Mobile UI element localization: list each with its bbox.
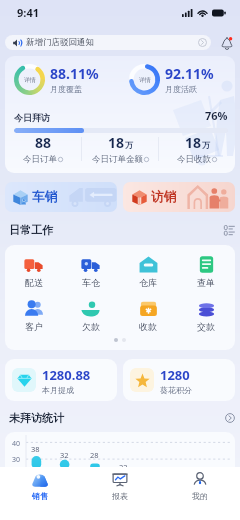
button[interactable]: 18: [159, 133, 235, 165]
staticText: 仓库: [139, 277, 157, 288]
staticText: 访销: [151, 189, 176, 205]
staticText: 万: [202, 140, 210, 150]
staticText: 今日订单金额: [92, 154, 143, 165]
button[interactable]: 客户: [5, 299, 62, 332]
button[interactable]: 访销: [123, 182, 235, 212]
button[interactable]: 详情: [14, 63, 120, 95]
staticText: 今日订单: [23, 154, 57, 165]
button[interactable]: More: [225, 413, 235, 423]
button[interactable]: 车销: [5, 182, 117, 212]
staticText: 葵花积分: [160, 385, 192, 395]
button[interactable]: 报表: [80, 467, 160, 520]
button[interactable]: 销售: [0, 467, 80, 520]
staticText: 交款: [197, 321, 215, 332]
staticText: 1280: [160, 366, 190, 384]
staticText: 32: [60, 450, 69, 460]
staticText: 92.11%: [165, 64, 214, 83]
button[interactable]: 我的: [160, 467, 240, 520]
button[interactable]: 查单: [177, 255, 235, 288]
button[interactable]: 18: [82, 133, 158, 165]
staticText: 88.11%: [50, 64, 99, 83]
staticText: 88: [35, 133, 52, 152]
staticText: 欠款: [82, 321, 100, 332]
staticText: 18: [108, 133, 125, 152]
staticText: 今日拜访: [14, 112, 50, 123]
button[interactable]: List view: [224, 225, 235, 236]
button[interactable]: 详情: [129, 63, 235, 95]
staticText: 未拜访统计: [9, 411, 64, 425]
button[interactable]: 1280.88: [5, 359, 117, 401]
staticText: 30: [12, 455, 21, 465]
staticText: 1280.88: [42, 366, 91, 384]
staticText: 配送: [25, 277, 43, 288]
staticText: 车销: [32, 189, 57, 205]
button[interactable]: 欠款: [62, 299, 119, 332]
staticText: 报表: [112, 491, 128, 501]
button[interactable]: 收款: [119, 299, 177, 332]
staticText: 月度活跃: [165, 84, 197, 94]
staticText: 今日收款: [177, 154, 211, 165]
button[interactable]: 配送: [5, 255, 62, 288]
button[interactable]: Notifications: [221, 35, 233, 50]
staticText: 详情: [139, 76, 151, 84]
staticText: 38: [31, 444, 40, 454]
staticText: 新增门店驳回通知: [26, 37, 94, 48]
button[interactable]: 车仓: [62, 255, 119, 288]
staticText: 车仓: [82, 277, 100, 288]
button[interactable]: 新增门店驳回通知: [5, 35, 211, 50]
staticText: 28: [90, 450, 99, 460]
staticText: 查单: [197, 277, 215, 288]
button[interactable]: 1280: [123, 359, 235, 401]
staticText: 我的: [192, 491, 208, 501]
staticText: 客户: [25, 321, 43, 332]
button[interactable]: 88: [5, 133, 81, 165]
staticText: 详情: [24, 76, 36, 84]
button[interactable]: 交款: [177, 299, 235, 332]
staticText: 销售: [32, 491, 48, 501]
staticText: 月度覆盖: [50, 84, 82, 94]
staticText: 本月提成: [42, 385, 74, 395]
staticText: 22: [119, 462, 128, 467]
staticText: 收款: [139, 321, 157, 332]
staticText: 18: [185, 133, 202, 152]
staticText: 76%: [205, 108, 228, 123]
staticText: 日常工作: [9, 223, 53, 237]
staticText: 40: [12, 439, 21, 449]
staticText: 万: [125, 140, 133, 150]
button[interactable]: 仓库: [119, 255, 177, 288]
staticText: 9:41: [17, 5, 39, 20]
